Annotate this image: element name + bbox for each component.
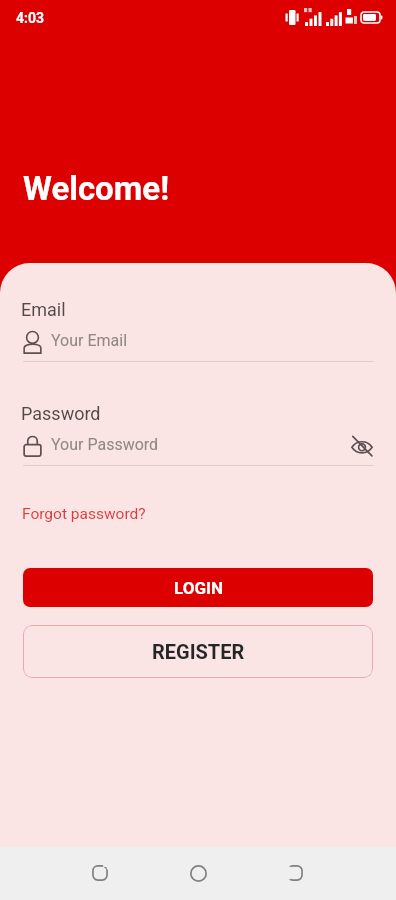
staticText: REGISTER	[152, 640, 245, 663]
button[interactable]: REGISTER	[23, 625, 373, 678]
button[interactable]: LOGIN	[23, 568, 373, 607]
staticText: Your Password	[51, 435, 159, 454]
staticText: LOGIN	[174, 578, 223, 598]
button[interactable]: Show password	[349, 433, 375, 459]
staticText: Forgot password?	[22, 505, 146, 523]
staticText: Email	[21, 299, 66, 320]
staticText: Your Email	[51, 331, 128, 350]
button[interactable]: Home	[174, 849, 222, 897]
staticText: Password	[21, 403, 101, 424]
button[interactable]: Forgot password?	[22, 505, 146, 523]
button[interactable]: Recent apps	[271, 849, 319, 897]
button[interactable]: Back	[76, 849, 124, 897]
staticText: 4:03	[16, 10, 45, 26]
staticText: Welcome!	[23, 169, 170, 208]
